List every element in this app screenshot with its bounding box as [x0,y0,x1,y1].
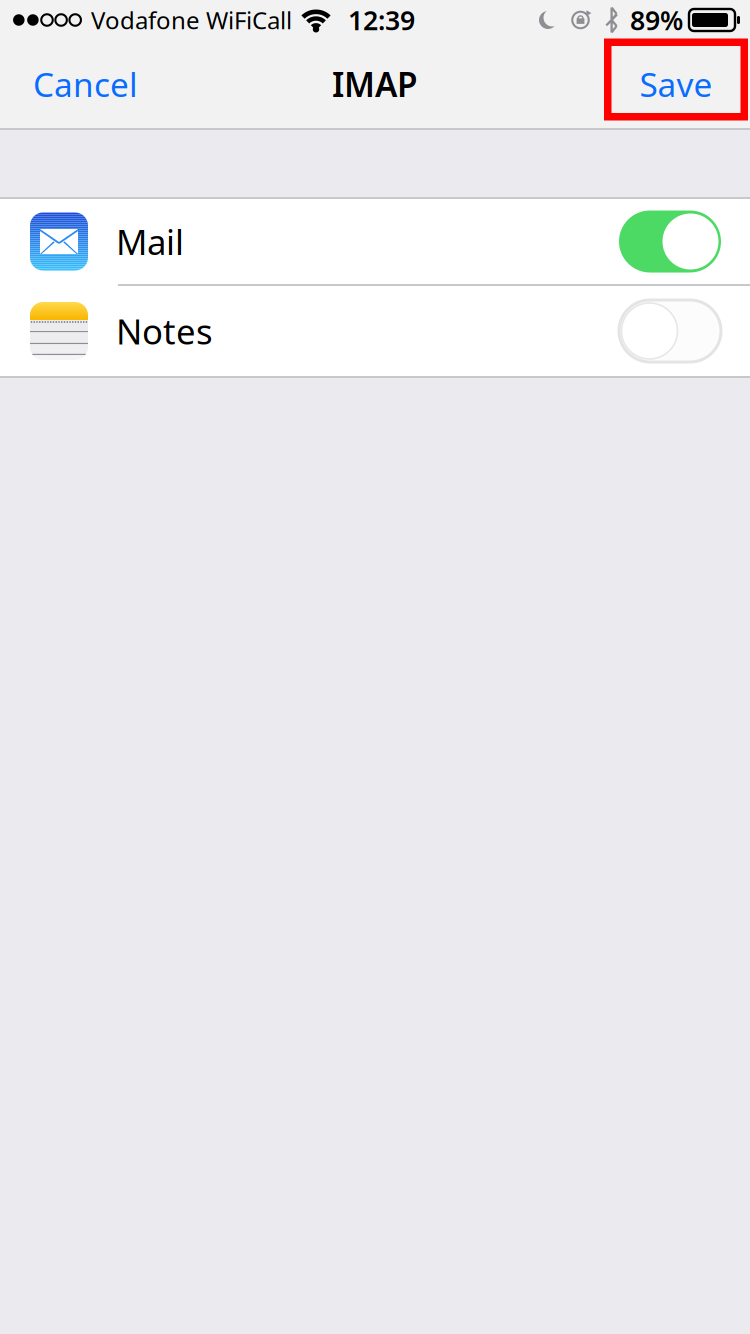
staticText: 12:39 [348,2,415,38]
button[interactable]: Cancel [33,40,173,128]
staticText: 89% [630,2,683,38]
staticText: Notes [116,308,213,354]
staticText: Vodafone WiFiCall [91,4,292,36]
staticText: Save [639,62,712,106]
staticText: Cancel [33,62,138,106]
staticText: Mail [116,218,184,264]
button[interactable]: Save [604,38,748,129]
button[interactable]: Notes [0,286,750,376]
button[interactable]: Mail [0,199,750,286]
staticText: IMAP [332,62,418,106]
